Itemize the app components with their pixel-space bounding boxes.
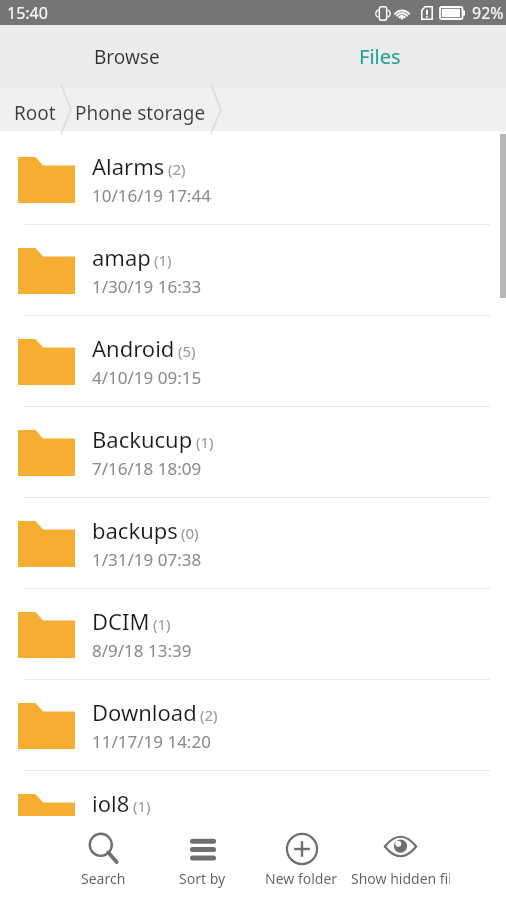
button[interactable]: DCIM xyxy=(0,589,506,680)
staticText: Search xyxy=(81,869,126,888)
button[interactable]: backups xyxy=(0,498,506,589)
staticText: (5) xyxy=(178,341,196,361)
staticText: 92% xyxy=(472,2,504,24)
button[interactable]: Sort by xyxy=(153,816,252,900)
button[interactable]: Android xyxy=(0,316,506,407)
staticText: 1/31/19 07:38 xyxy=(92,548,202,571)
staticText: (2) xyxy=(168,159,186,179)
staticText: (1) xyxy=(133,796,151,816)
button[interactable]: Show hidden files xyxy=(351,816,450,900)
button[interactable]: amap xyxy=(0,225,506,316)
button[interactable]: Download xyxy=(0,680,506,771)
staticText: Root xyxy=(14,100,56,126)
staticText: Android xyxy=(92,333,175,363)
staticText: (1) xyxy=(153,614,171,634)
staticText: Browse xyxy=(94,44,160,70)
staticText: New folder xyxy=(265,869,338,888)
staticText: 11/17/19 14:20 xyxy=(92,730,211,753)
staticText: Backucup xyxy=(92,424,193,454)
staticText: 10/16/19 17:44 xyxy=(92,184,211,207)
staticText: 2/2/19 11:02 xyxy=(92,821,192,844)
button[interactable]: iol8 xyxy=(0,771,506,862)
staticText: 1/30/19 16:33 xyxy=(92,275,202,298)
staticText: amap xyxy=(92,242,151,272)
staticText: Download xyxy=(92,697,197,727)
staticText: DCIM xyxy=(92,606,150,636)
button[interactable]: Root xyxy=(0,88,61,131)
staticText: (1) xyxy=(196,432,214,452)
staticText: Sort by xyxy=(179,869,226,888)
staticText: 7/16/18 18:09 xyxy=(92,457,202,480)
button[interactable]: Phone storage xyxy=(71,88,211,131)
button[interactable]: Alarms xyxy=(0,134,506,225)
button[interactable]: Search xyxy=(54,816,153,900)
staticText: (1) xyxy=(154,250,172,270)
staticText: 15:40 xyxy=(7,2,48,24)
staticText: (2) xyxy=(200,705,218,725)
staticText: 4/10/19 09:15 xyxy=(92,366,202,389)
staticText: Phone storage xyxy=(75,100,206,126)
staticText: Files xyxy=(359,43,401,70)
button[interactable]: New folder xyxy=(252,816,351,900)
staticText: backups xyxy=(92,515,178,545)
button[interactable]: Backucup xyxy=(0,407,506,498)
staticText: iol8 xyxy=(92,788,130,818)
staticText: (0) xyxy=(181,523,199,543)
staticText: 8/9/18 13:39 xyxy=(92,639,192,662)
staticText: Alarms xyxy=(92,151,165,181)
button[interactable]: Browse xyxy=(0,25,253,88)
staticText: Show hidden files xyxy=(351,869,450,888)
button[interactable]: Files xyxy=(253,25,506,88)
